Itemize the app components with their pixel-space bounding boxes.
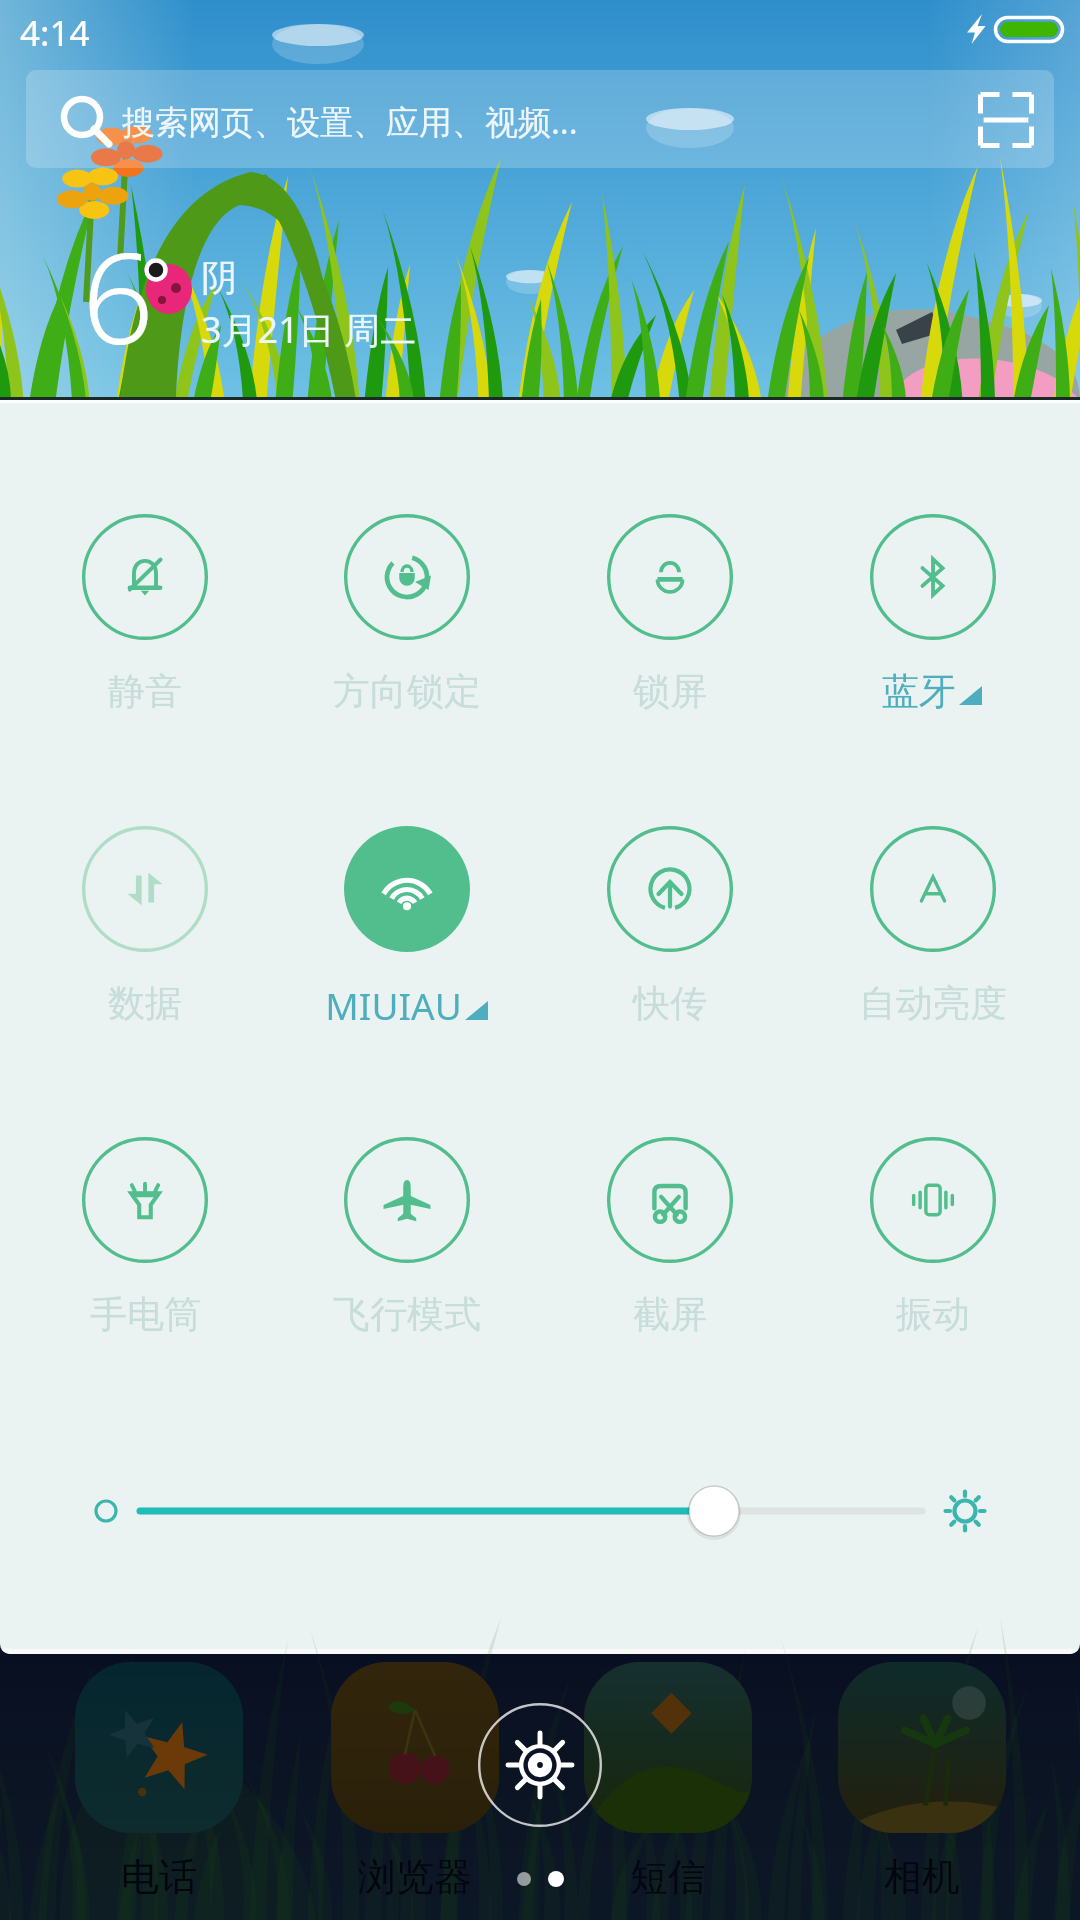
staticText: 飞行模式 [333,1291,481,1338]
staticText: 4:14 [20,9,90,57]
button[interactable]: Settings [478,1703,602,1827]
button[interactable]: 截屏 [538,1137,801,1338]
button[interactable]: 搜索网页、设置、应用、视频... [26,70,1054,168]
button[interactable]: 手电筒 [14,1137,276,1338]
staticText: 相机 [884,1853,960,1901]
staticText: 蓝牙 [882,668,956,715]
staticText: 锁屏 [633,668,707,715]
button[interactable]: 方向锁定 [276,514,538,715]
staticText: 短信 [630,1853,706,1901]
button[interactable]: 短信 [584,1662,752,1901]
button[interactable]: 电话 [75,1662,243,1901]
staticText: 静音 [108,668,182,715]
staticText: 数据 [108,980,182,1027]
button[interactable]: 相机 [838,1662,1006,1901]
button[interactable]: 锁屏 [538,514,801,715]
button[interactable]: 数据 [14,826,276,1027]
staticText: 浏览器 [358,1853,472,1901]
button[interactable]: 快传 [538,826,801,1027]
staticText: 电话 [121,1853,197,1901]
staticText: 6 [82,209,154,381]
button[interactable]: 飞行模式 [276,1137,538,1338]
button[interactable]: 静音 [14,514,276,715]
button[interactable]: 浏览器 [331,1662,499,1901]
button[interactable]: 蓝牙 [801,514,1064,715]
staticText: 截屏 [633,1291,707,1338]
staticText: 方向锁定 [333,668,481,715]
staticText: 自动亮度 [859,980,1007,1027]
button[interactable]: 振动 [801,1137,1064,1338]
staticText: 振动 [896,1291,970,1338]
button[interactable]: MIUIAU [276,826,538,1030]
staticText: 手电筒 [90,1291,201,1338]
staticText: MIUIAU [325,980,462,1030]
staticText: 搜索网页、设置、应用、视频... [122,99,578,144]
button[interactable]: Scan code [978,92,1034,148]
button[interactable] [0,1446,1080,1566]
staticText: 3月21日 周二 [201,305,417,354]
staticText: 阴 [201,255,237,300]
button[interactable]: 自动亮度 [801,826,1064,1027]
staticText: 快传 [633,980,707,1027]
